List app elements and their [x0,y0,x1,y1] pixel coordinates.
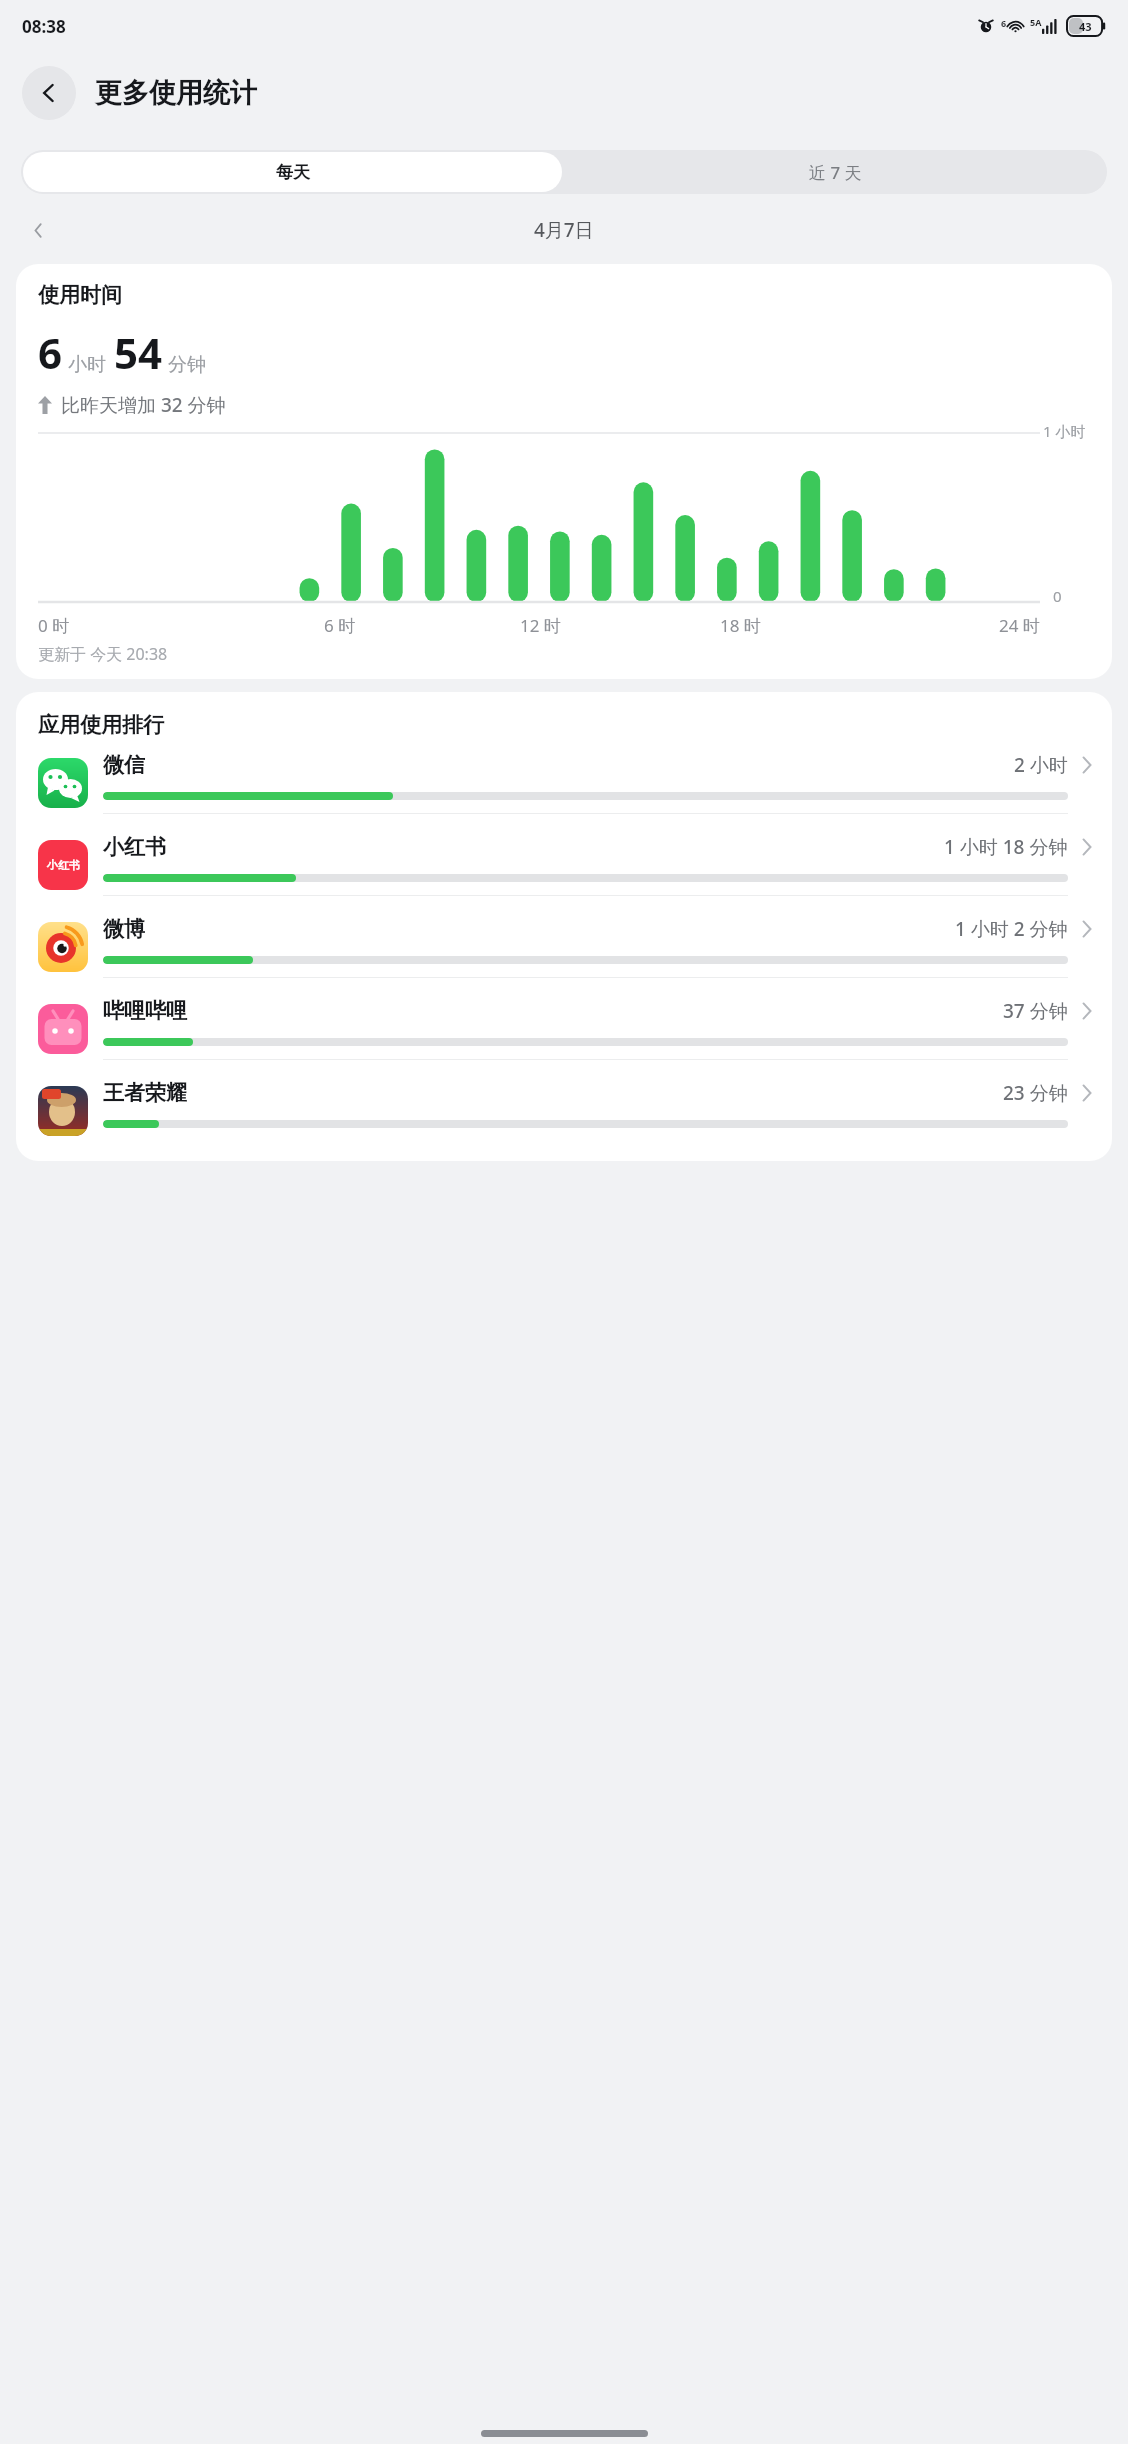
staticText: 08:38 [22,15,66,38]
staticText: 1 小时 18 分钟 [944,834,1068,860]
staticText: 4月7日 [534,217,594,243]
staticText: 每天 [276,162,310,183]
staticText: 2 小时 [1014,752,1068,778]
staticText: 近 7 天 [809,161,862,184]
button[interactable]: 微信 [38,752,1092,834]
button[interactable]: 王者荣耀 [38,1080,1092,1161]
staticText: 12 时 [520,614,561,637]
staticText: 54 [114,324,163,381]
staticText: 43 [1079,19,1092,34]
button[interactable]: Previous day [18,210,58,250]
staticText: 比昨天增加 32 分钟 [61,392,226,418]
staticText: 0 时 [38,614,70,637]
button[interactable]: 每天 [23,152,562,192]
staticText: 37 分钟 [1003,998,1068,1024]
staticText: 使用时间 [38,282,122,308]
button[interactable]: 小红书 [38,834,1092,916]
button[interactable]: Back [22,66,76,120]
staticText: 小时 [68,353,106,377]
button[interactable]: 近 7 天 [564,150,1107,194]
staticText: 微博 [103,916,145,942]
staticText: 6 [38,324,63,381]
staticText: 24 时 [999,614,1040,637]
staticText: 小红书 [47,858,80,872]
staticText: 5A [1030,16,1042,28]
staticText: 王者荣耀 [103,1080,187,1106]
staticText: 1 小时 [1043,421,1086,441]
staticText: 更多使用统计 [95,76,257,110]
staticText: 0 [1053,586,1062,606]
staticText: 1 小时 2 分钟 [955,916,1068,942]
staticText: 6 [1001,17,1007,29]
staticText: 更新于 今天 20:38 [38,643,168,665]
staticText: 应用使用排行 [38,712,164,738]
staticText: 23 分钟 [1003,1080,1068,1106]
staticText: 小红书 [103,834,166,860]
staticText: 哔哩哔哩 [103,998,187,1024]
button[interactable]: 微博 [38,916,1092,998]
staticText: 18 时 [720,614,761,637]
staticText: 微信 [103,752,145,778]
staticText: 分钟 [168,353,206,377]
staticText: 6 时 [324,614,356,637]
button[interactable]: 哔哩哔哩 [38,998,1092,1080]
